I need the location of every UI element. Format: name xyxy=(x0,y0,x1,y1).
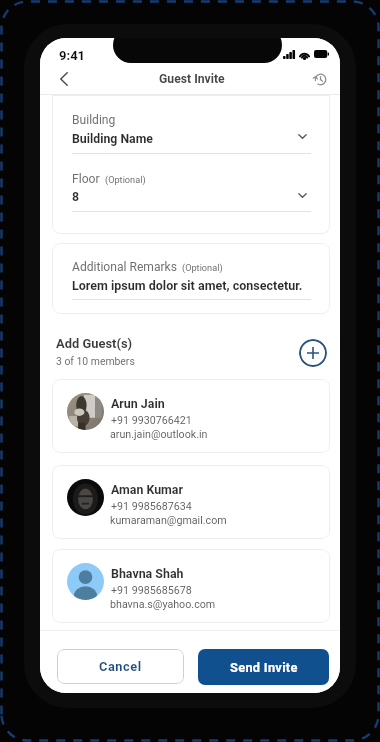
staticText: (Optional) xyxy=(182,262,223,273)
staticText: Cancel xyxy=(99,659,142,674)
staticText: kumaraman@gmail.com xyxy=(110,514,227,527)
staticText: Guest Invite xyxy=(159,72,225,86)
button[interactable]: Back xyxy=(50,65,78,93)
staticText: Building xyxy=(72,113,116,127)
staticText: arun.jain@outlook.in xyxy=(110,428,208,441)
button[interactable]: Bhavna Shah xyxy=(52,549,330,623)
button[interactable]: Send Invite xyxy=(198,649,329,685)
button[interactable]: Arun Jain xyxy=(52,379,330,453)
staticText: Send Invite xyxy=(230,660,298,675)
staticText: 8 xyxy=(72,190,80,204)
staticText: Aman Kumar xyxy=(111,482,184,497)
staticText: Bhavna Shah xyxy=(111,566,184,581)
staticText: Floor xyxy=(72,172,100,186)
staticText: +91 9985685678 xyxy=(111,584,192,597)
staticText: Lorem ipsum dolor sit amet, consectetur. xyxy=(72,278,303,293)
button[interactable]: Cancel xyxy=(57,649,184,684)
staticText: Add Guest(s) xyxy=(56,336,133,351)
button[interactable]: Add guest xyxy=(299,339,327,367)
button[interactable]: Aman Kumar xyxy=(52,465,330,539)
staticText: bhavna.s@yahoo.com xyxy=(110,598,216,611)
staticText: +91 9985687634 xyxy=(111,500,192,513)
staticText: 9:41 xyxy=(59,48,86,63)
button[interactable]: History xyxy=(306,65,334,93)
staticText: Arun Jain xyxy=(111,396,165,411)
staticText: Building Name xyxy=(72,132,153,146)
staticText: (Optional) xyxy=(105,174,146,185)
staticText: 3 of 10 members xyxy=(56,355,135,367)
staticText: Additional Remarks xyxy=(72,260,177,274)
staticText: +91 9930766421 xyxy=(111,414,192,427)
